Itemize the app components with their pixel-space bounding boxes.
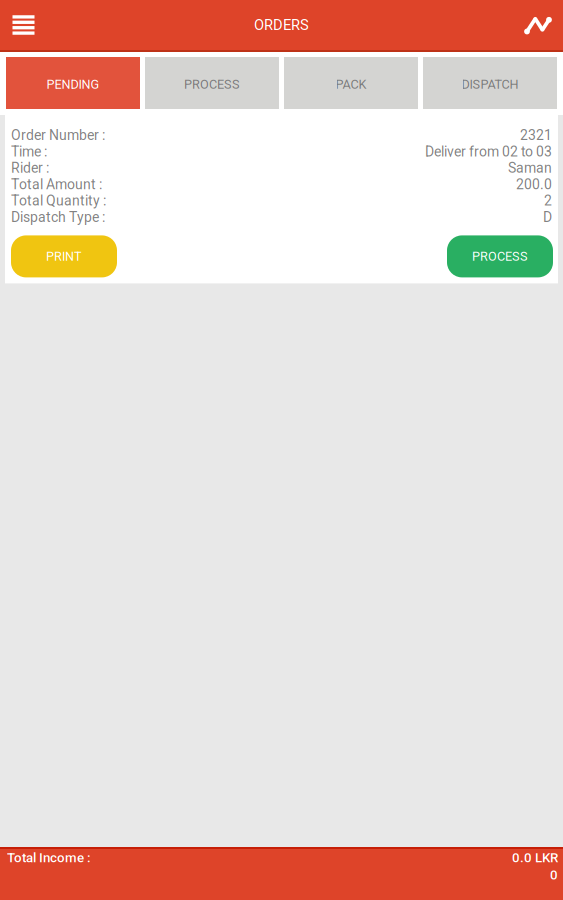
staticText: PROCESS	[184, 77, 240, 92]
staticText: Total Quantity :	[11, 193, 106, 209]
staticText: Rider :	[11, 160, 49, 176]
staticText: 0	[550, 867, 558, 883]
staticText: 200.0	[516, 176, 552, 193]
button[interactable]: PACK	[284, 57, 418, 109]
staticText: PROCESS	[472, 249, 528, 264]
staticText: Total Income :	[7, 850, 91, 866]
staticText: D	[543, 209, 552, 225]
staticText: 2	[544, 193, 552, 209]
button[interactable]: PRINT	[11, 235, 117, 277]
staticText: Total Amount :	[11, 176, 102, 193]
staticText: Saman	[508, 160, 552, 176]
staticText: DISPATCH	[461, 77, 518, 92]
staticText: PRINT	[46, 249, 82, 264]
button[interactable]: PROCESS	[447, 235, 553, 277]
button[interactable]: Statistics	[513, 0, 563, 50]
staticText: Dispatch Type :	[11, 209, 105, 225]
staticText: 2321	[520, 127, 552, 143]
button[interactable]: PROCESS	[145, 57, 279, 109]
staticText: Deliver from 02 to 03	[425, 143, 552, 160]
staticText: ORDERS	[254, 16, 309, 34]
staticText: PACK	[335, 77, 366, 92]
staticText: PENDING	[46, 77, 99, 92]
staticText: Order Number :	[11, 127, 105, 143]
staticText: Time :	[11, 143, 47, 160]
staticText: 0.0 LKR	[512, 850, 558, 866]
button[interactable]: DISPATCH	[423, 57, 557, 109]
button[interactable]: PENDING	[6, 57, 140, 109]
button[interactable]: Menu	[0, 0, 47, 50]
